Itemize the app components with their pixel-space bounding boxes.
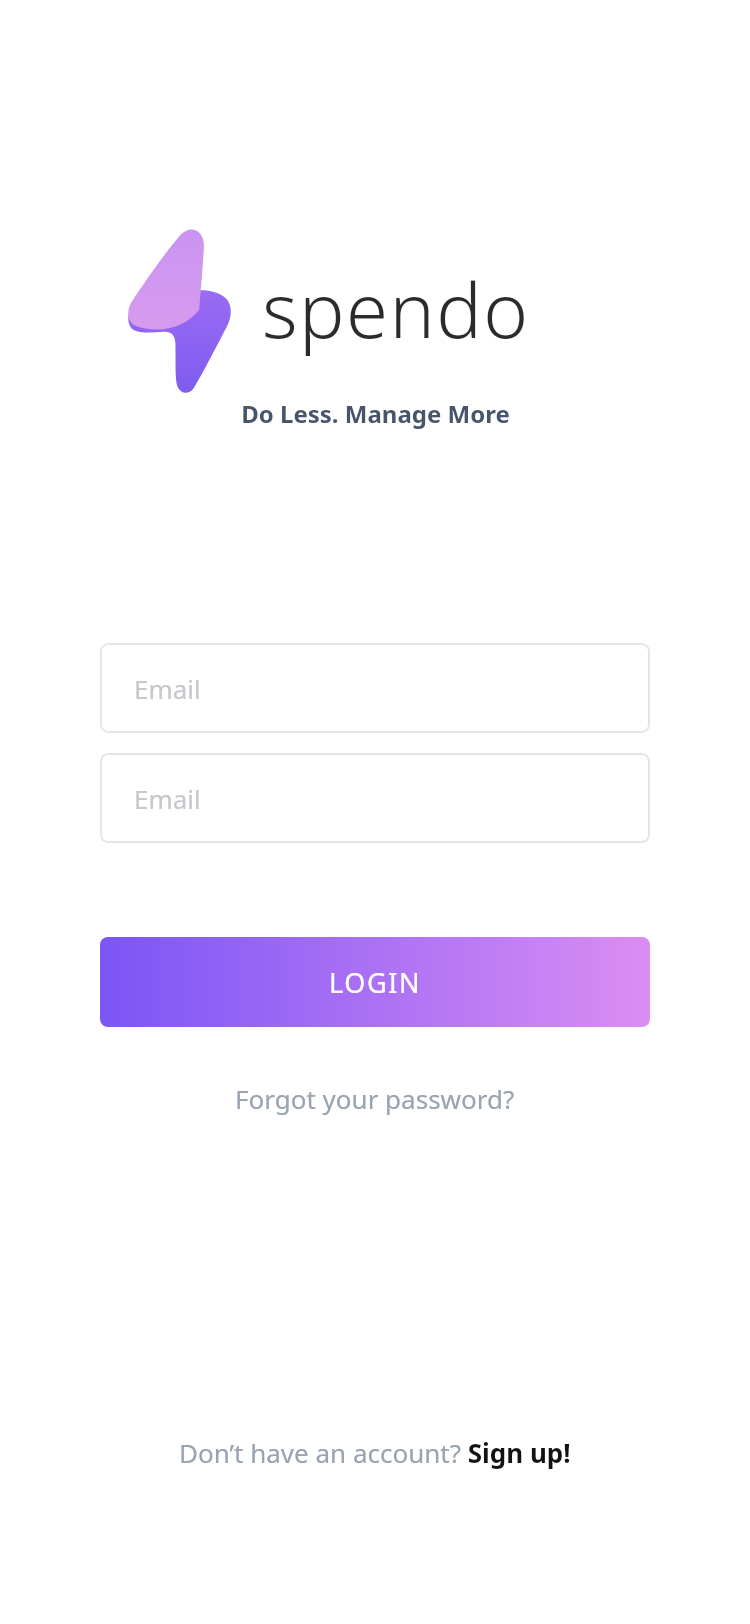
other: Spendo logo bbox=[126, 225, 232, 393]
staticText: spendo bbox=[262, 257, 530, 361]
button[interactable]: Email bbox=[100, 753, 650, 843]
staticText: Email bbox=[134, 671, 201, 706]
button[interactable]: Forgot your password? bbox=[223, 1075, 527, 1122]
staticText: Forgot your password? bbox=[235, 1081, 515, 1116]
button[interactable]: LOGIN bbox=[100, 937, 650, 1027]
button[interactable]: Don’t have an account? Sign up! bbox=[167, 1429, 583, 1476]
staticText: Do Less. Manage More bbox=[241, 397, 510, 430]
button[interactable]: Email bbox=[100, 643, 650, 733]
staticText: Don’t have an account? Sign up! bbox=[179, 1435, 571, 1470]
staticText: Email bbox=[134, 781, 201, 816]
staticText: LOGIN bbox=[329, 964, 422, 1001]
